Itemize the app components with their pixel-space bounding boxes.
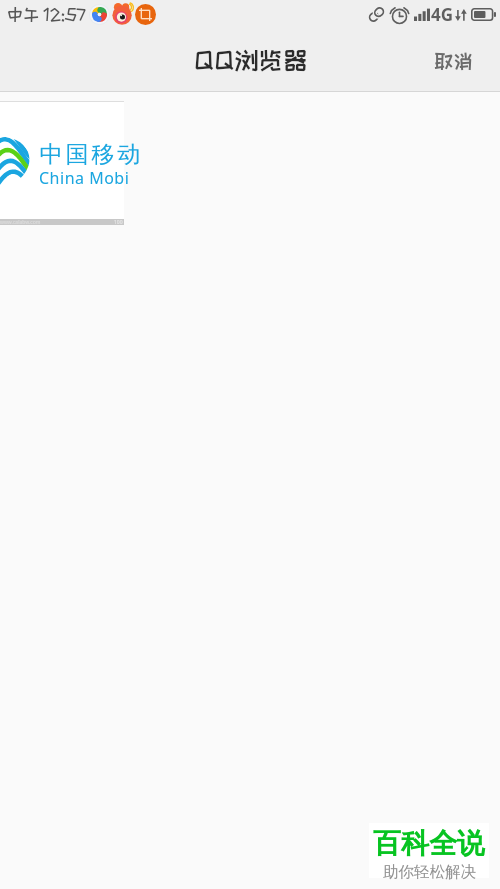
staticText: 百科全说 (373, 826, 485, 861)
other: Weibo (112, 4, 133, 25)
button[interactable]: 取消 (414, 35, 500, 86)
staticText: www.calabw.com (0, 219, 41, 225)
staticText: 100 (114, 219, 123, 225)
other: Link (367, 5, 386, 24)
staticText: 4G (431, 3, 454, 26)
staticText: 中国移动 (38, 140, 142, 169)
other: Battery (471, 8, 497, 21)
staticText: 中午 12:57 (7, 6, 86, 23)
other: Signal strength (414, 7, 430, 22)
staticText: 助你轻松解决 (383, 862, 476, 881)
other: Google Photos (89, 4, 110, 25)
staticText: China Mobi (39, 167, 130, 189)
staticText: QQ浏览器 (194, 47, 308, 73)
other: Screenshot (135, 4, 156, 25)
other: Data transfer (454, 7, 467, 23)
staticText: 取消 (434, 51, 473, 72)
other: Alarm (390, 5, 409, 24)
button[interactable]: 中国移动 China Mobile 网页 (0, 101, 124, 225)
